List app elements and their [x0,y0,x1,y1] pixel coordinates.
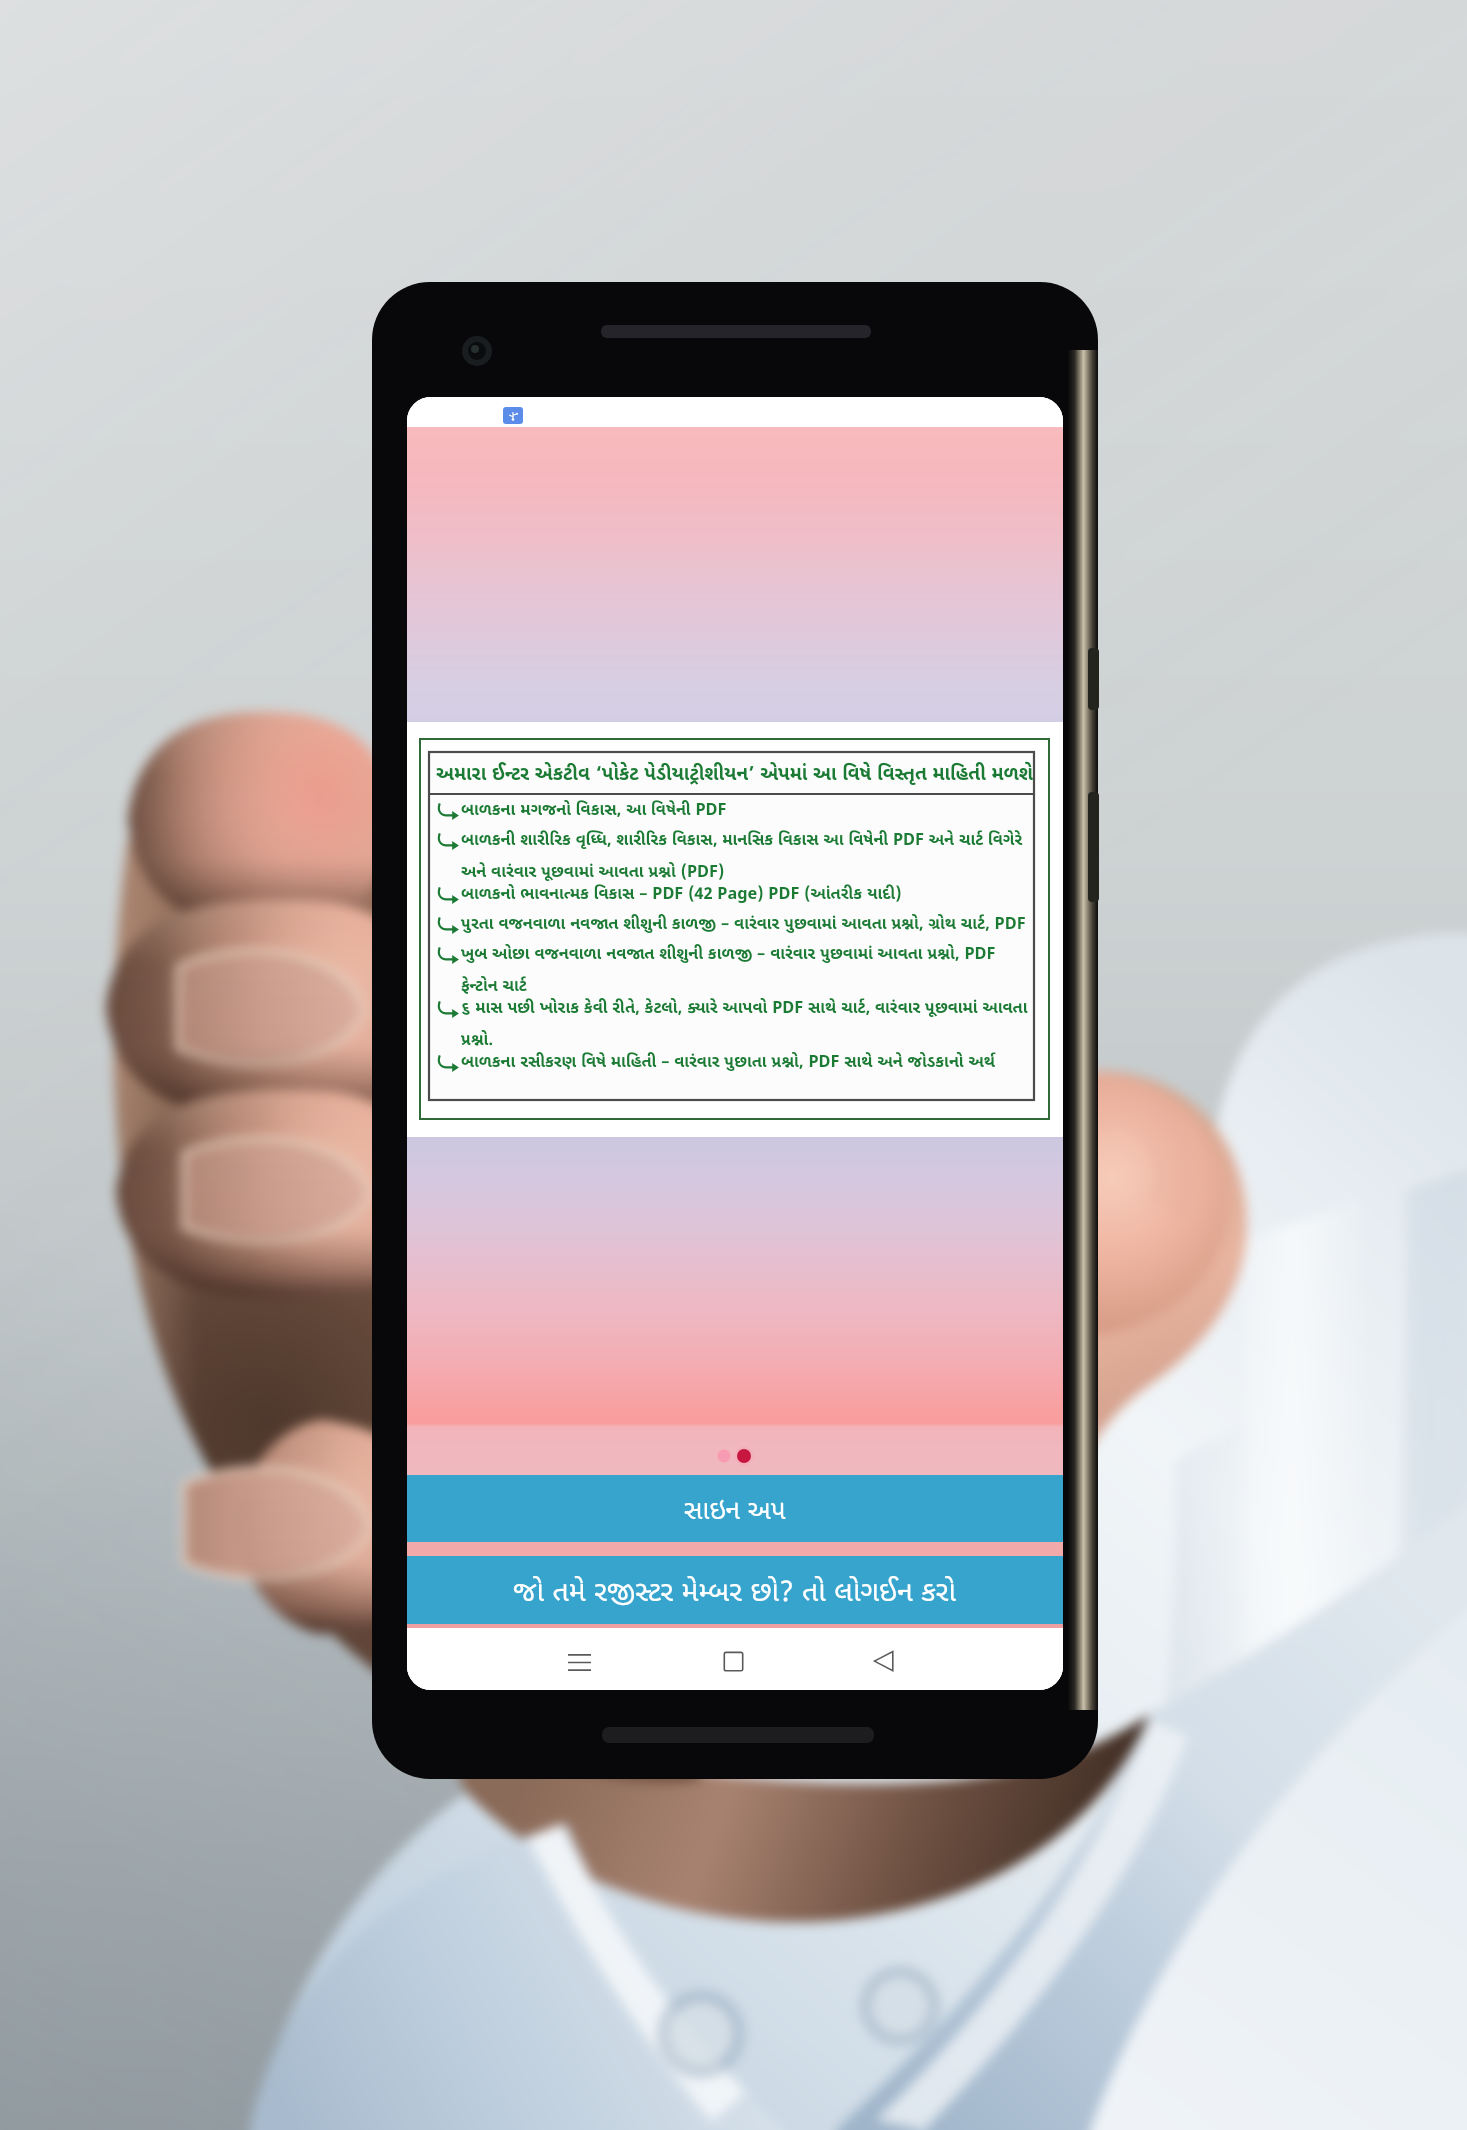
button[interactable]: પુરતા વજનવાળા નવજાત શીશુની કાળજી – વારંવ… [435,912,1030,942]
staticText: અમારા ઈન્ટર એકટીવ ‘પોકેટ પેડીયાટ્રીશીયન’… [436,760,1033,786]
staticText: જો તમે રજીસ્ટર મેમ્બર છો? તો લોગઈન કરો [513,1571,957,1610]
staticText: બાળકના રસીકરણ વિષે માહિતી – વારંવાર પુછા… [461,1050,995,1072]
button[interactable]: ખુબ ઓછા વજનવાળા નવજાત શીશુની કાળજી – વાર… [435,942,1030,996]
button[interactable]: સાઇન અપ [407,1475,1063,1542]
staticText: બાળકની શારીરિક વૃધ્ધિ, શારીરિક વિકાસ, મા… [461,828,1030,882]
staticText: ૬ માસ પછી ખોરાક કેવી રીતે, કેટલો, ક્યારે… [461,996,1030,1050]
button[interactable]: બાળકના રસીકરણ વિષે માહિતી – વારંવાર પુછા… [435,1050,1030,1080]
staticText: બાળકના મગજનો વિકાસ, આ વિષેની PDF [461,798,727,820]
button[interactable]: બાળકના મગજનો વિકાસ, આ વિષેની PDF [435,798,1030,828]
button[interactable]: બાળકનો ભાવનાત્મક વિકાસ – PDF (42 Page) P… [435,882,1030,912]
button[interactable]: Home [706,1635,760,1689]
button[interactable]: જો તમે રજીસ્ટર મેમ્બર છો? તો લોગઈન કરો [407,1556,1063,1624]
staticText: પુરતા વજનવાળા નવજાત શીશુની કાળજી – વારંવ… [461,912,1026,934]
button[interactable]: Back [857,1635,911,1689]
button[interactable]: USB debugging enabled [503,407,523,424]
staticText: સાઇન અપ [684,1491,786,1526]
button[interactable]: ૬ માસ પછી ખોરાક કેવી રીતે, કેટલો, ક્યારે… [435,996,1030,1050]
staticText: ખુબ ઓછા વજનવાળા નવજાત શીશુની કાળજી – વાર… [461,942,1030,996]
button[interactable]: બાળકની શારીરિક વૃધ્ધિ, શારીરિક વિકાસ, મા… [435,828,1030,882]
staticText: બાળકનો ભાવનાત્મક વિકાસ – PDF (42 Page) P… [461,882,902,904]
button[interactable]: Menu [552,1635,606,1689]
